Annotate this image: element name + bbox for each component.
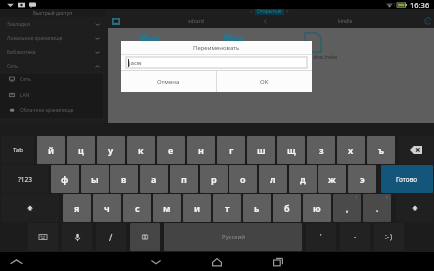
button[interactable]: к (127, 136, 155, 164)
button[interactable]: Show keyboard (8, 254, 24, 270)
button[interactable]: э (348, 165, 376, 193)
staticText: ?123 (18, 175, 32, 184)
button[interactable]: Библиотека (0, 45, 105, 59)
button[interactable]: о (229, 165, 257, 193)
button[interactable]: / (96, 223, 126, 251)
button[interactable]: а (140, 165, 168, 193)
button[interactable]: Shift (1, 194, 59, 222)
button[interactable]: Change language (130, 223, 160, 251)
staticText: т (225, 202, 230, 214)
button[interactable]: : (374, 223, 404, 251)
staticText: в (121, 173, 127, 185)
button[interactable]: Switch keyboard (28, 223, 58, 251)
button[interactable]: LAN (0, 88, 105, 102)
staticText: Закладки (7, 21, 30, 28)
button[interactable]: н (187, 136, 215, 164)
button[interactable]: OK (217, 71, 312, 92)
staticText: у (108, 144, 114, 156)
button[interactable]: ж (318, 165, 346, 193)
staticText: kindle (338, 18, 353, 25)
button[interactable]: Облачное хранилище (0, 103, 105, 117)
staticText: к (138, 144, 144, 156)
button[interactable]: ф (51, 165, 79, 193)
staticText: ю (313, 202, 321, 214)
button[interactable]: е (157, 136, 185, 164)
button[interactable]: щ (277, 136, 305, 164)
staticText: б (284, 202, 290, 214)
other: Switch keyboard (39, 233, 47, 241)
button[interactable]: и (183, 194, 211, 222)
staticText: Открытые (257, 8, 282, 15)
button[interactable]: Up (262, 18, 269, 25)
button[interactable]: ч (93, 194, 121, 222)
button[interactable]: Сеть (0, 59, 105, 73)
staticText: ы (91, 173, 99, 185)
staticText: ч (104, 202, 110, 214)
staticText: Облачное хранилище (20, 107, 74, 114)
button[interactable]: ?123 (1, 165, 48, 193)
staticText: Tab (13, 146, 23, 154)
button[interactable]: Home (209, 254, 225, 270)
button[interactable]: Tab (1, 136, 34, 164)
button[interactable]: х (337, 136, 365, 164)
staticText: и (194, 202, 201, 214)
staticText: » (286, 8, 289, 15)
button[interactable]: п (170, 165, 198, 193)
other: Change language (141, 233, 149, 241)
button[interactable]: Backspace (399, 136, 433, 164)
staticText: п (181, 173, 187, 185)
button[interactable]: й (37, 136, 65, 164)
staticText: Русский (222, 233, 245, 241)
staticText: л (270, 173, 276, 185)
button[interactable]: ш (247, 136, 275, 164)
button[interactable]: т (213, 194, 241, 222)
staticText: : (394, 1, 396, 8)
staticText: Сеть (20, 76, 31, 83)
button[interactable]: Сеть (0, 72, 105, 86)
staticText: д (300, 173, 306, 185)
button[interactable]: Закладки (0, 17, 105, 31)
button[interactable]: Готово (381, 165, 433, 193)
staticText: ш (257, 144, 266, 156)
staticText: jacw (129, 59, 142, 67)
button[interactable]: Voice input (62, 223, 92, 251)
staticText: ъ (378, 144, 385, 156)
button[interactable]: л (259, 165, 287, 193)
button[interactable]: ! (333, 194, 361, 222)
button[interactable]: Русский (164, 223, 302, 251)
button[interactable]: Recents (270, 254, 286, 270)
button[interactable]: ю (303, 194, 331, 222)
button[interactable]: Отмена (121, 71, 216, 92)
button[interactable]: ь (243, 194, 271, 222)
button[interactable]: б (273, 194, 301, 222)
button[interactable]: у (97, 136, 125, 164)
staticText: щ (287, 144, 296, 156)
button[interactable]: Back (148, 254, 164, 270)
staticText: . (376, 203, 379, 214)
button[interactable]: я (63, 194, 91, 222)
staticText: м (163, 202, 171, 214)
button[interactable]: ' (306, 223, 336, 251)
button[interactable]: г (217, 136, 245, 164)
button[interactable]: ы (81, 165, 109, 193)
button[interactable]: jacw (126, 57, 307, 68)
button[interactable]: д (289, 165, 317, 193)
button[interactable]: ъ (367, 136, 395, 164)
button[interactable]: с (123, 194, 151, 222)
button[interactable]: Refresh (423, 16, 433, 26)
staticText: ц (78, 144, 84, 156)
button[interactable]: Shift (396, 194, 433, 222)
button[interactable]: з (307, 136, 335, 164)
staticText: э (360, 173, 365, 185)
staticText: , (346, 203, 349, 214)
staticText: з (319, 144, 324, 156)
button[interactable]: Локальное хранилище (0, 31, 105, 45)
button[interactable]: Storage (112, 18, 120, 25)
button[interactable]: р (200, 165, 228, 193)
button[interactable]: ? (363, 194, 391, 222)
button[interactable]: - (340, 223, 370, 251)
button[interactable]: м (153, 194, 181, 222)
button[interactable]: ц (67, 136, 95, 164)
button[interactable]: в (110, 165, 138, 193)
button[interactable]: « (250, 8, 289, 15)
